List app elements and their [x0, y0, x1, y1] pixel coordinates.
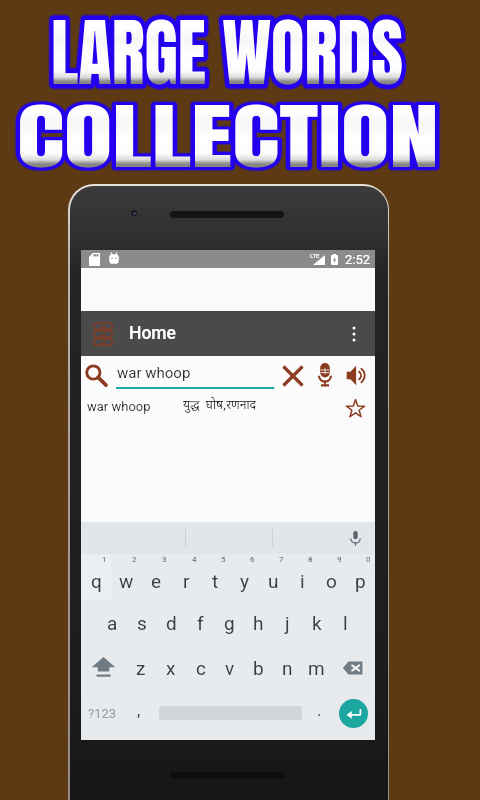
staticText: o	[326, 570, 337, 592]
staticText: 6	[250, 555, 255, 564]
button[interactable]: 5	[201, 554, 230, 600]
button[interactable]: 0	[346, 554, 375, 600]
staticText: 0	[366, 555, 371, 564]
staticText: e	[151, 570, 162, 592]
staticText: f	[197, 612, 204, 634]
staticText: w	[119, 570, 134, 592]
staticText: 8	[308, 555, 313, 564]
staticText: LTE	[310, 252, 320, 259]
button[interactable]: n	[273, 645, 302, 690]
staticText: i	[300, 570, 305, 592]
button[interactable]: x	[156, 645, 186, 690]
button[interactable]: v	[215, 645, 244, 690]
staticText: Home	[129, 323, 176, 344]
button[interactable]: Enter	[331, 690, 375, 736]
button[interactable]: f	[186, 600, 215, 645]
button[interactable]: Add to favourites	[343, 396, 368, 421]
button[interactable]: k	[302, 600, 331, 645]
staticText: k	[312, 612, 322, 634]
staticText: 1	[102, 555, 107, 564]
staticText: l	[343, 612, 348, 634]
staticText: j	[285, 612, 290, 634]
staticText: v	[225, 657, 235, 679]
button[interactable]: l	[331, 600, 360, 645]
button[interactable]: d	[157, 600, 186, 645]
button[interactable]: 8	[288, 554, 317, 600]
staticText: q	[91, 570, 102, 592]
staticText: .	[317, 700, 322, 720]
button[interactable]: 4	[171, 554, 201, 600]
button[interactable]: war whoop	[81, 394, 375, 420]
button[interactable]: Space	[154, 690, 307, 736]
button[interactable]: s	[127, 600, 157, 645]
button[interactable]: Search	[84, 363, 109, 388]
button[interactable]: h	[244, 600, 273, 645]
button[interactable]: Home	[81, 311, 375, 356]
staticText: r	[183, 570, 190, 592]
button[interactable]: 7	[259, 554, 288, 600]
button[interactable]: z	[126, 645, 156, 690]
staticText: b	[253, 657, 264, 679]
staticText: d	[166, 612, 177, 634]
button[interactable]: Voice search	[314, 361, 336, 389]
button[interactable]: Shift	[81, 645, 126, 690]
button[interactable]: ?123	[81, 690, 124, 736]
staticText: ?123	[88, 706, 117, 721]
button[interactable]: Clear	[281, 364, 305, 388]
staticText: war whoop	[117, 364, 191, 382]
staticText: s	[137, 612, 147, 634]
staticText: 7	[279, 555, 284, 564]
staticText: ,	[137, 700, 141, 720]
button[interactable]: Backspace	[331, 645, 375, 690]
staticText: 9	[337, 555, 342, 564]
button[interactable]: 9	[317, 554, 346, 600]
button[interactable]: Voice input	[345, 528, 365, 548]
staticText: u	[268, 570, 279, 592]
staticText: n	[282, 657, 293, 679]
button[interactable]: Speak	[343, 361, 371, 389]
staticText: 2:52	[345, 252, 371, 267]
button[interactable]: m	[302, 645, 331, 690]
staticText: y	[240, 570, 249, 592]
button[interactable]: 6	[230, 554, 259, 600]
button[interactable]: b	[244, 645, 273, 690]
button[interactable]: 3	[141, 554, 171, 600]
button[interactable]: c	[186, 645, 215, 690]
staticText: p	[355, 570, 366, 592]
staticText: 4	[192, 555, 197, 564]
button[interactable]: More options	[338, 318, 370, 350]
staticText: 2	[132, 555, 137, 564]
button[interactable]: .	[307, 690, 331, 736]
button[interactable]: 2	[111, 554, 141, 600]
button[interactable]: 1	[81, 554, 111, 600]
staticText: c	[196, 657, 206, 679]
staticText: t	[212, 570, 219, 592]
staticText: war whoop	[87, 399, 151, 414]
staticText: h	[253, 612, 264, 634]
button[interactable]: ,	[124, 690, 154, 736]
button[interactable]: g	[215, 600, 244, 645]
staticText: 5	[221, 555, 226, 564]
staticText: g	[224, 612, 235, 634]
staticText: m	[308, 657, 325, 679]
staticText: युद्ध घोष,रणनाद	[183, 398, 256, 414]
staticText: x	[166, 657, 176, 679]
staticText: z	[136, 657, 146, 679]
button[interactable]: j	[273, 600, 302, 645]
button[interactable]: a	[97, 600, 127, 645]
staticText: a	[107, 612, 118, 634]
staticText: 3	[162, 555, 167, 564]
